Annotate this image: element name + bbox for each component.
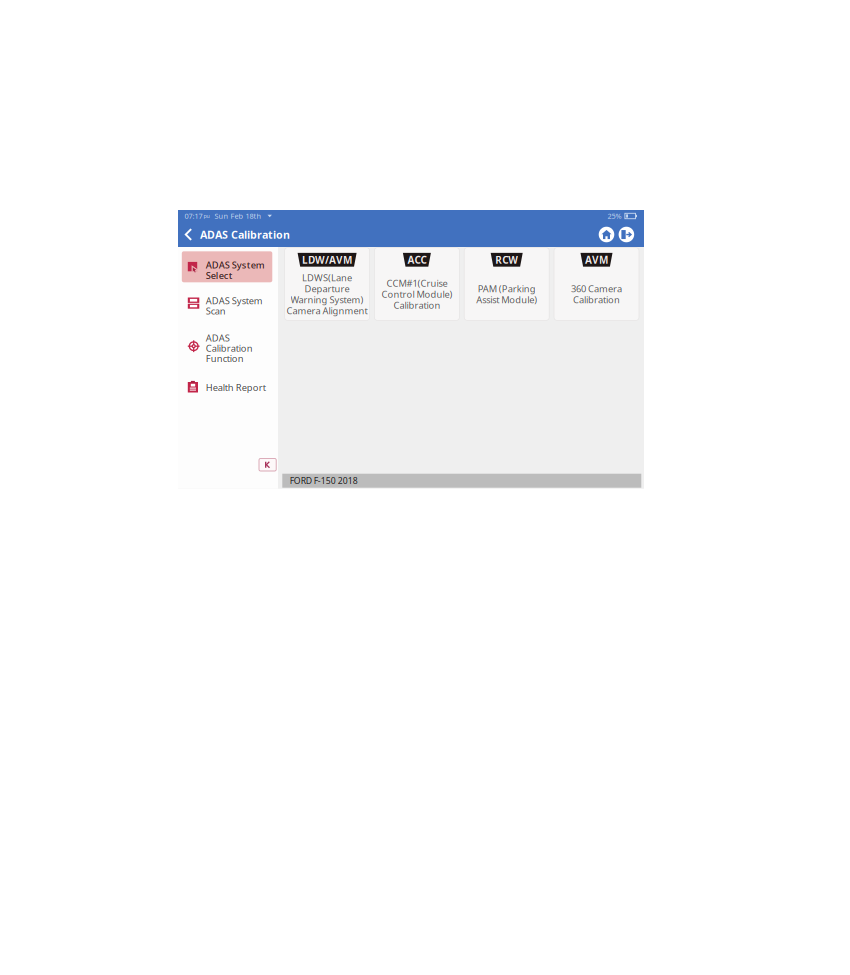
staticText: ACC <box>407 253 426 267</box>
staticText: RCW <box>495 253 518 267</box>
staticText: ADAS Calibration <box>200 227 290 242</box>
staticText: pu <box>203 212 209 220</box>
button[interactable]: Health Report <box>182 377 272 396</box>
staticText: LDWS(Lane <box>302 271 352 284</box>
staticText: Select <box>206 269 233 282</box>
button[interactable]: ADAS <box>182 327 272 365</box>
staticText: PAM (Parking <box>478 282 536 295</box>
staticText: 07:17 <box>184 211 202 221</box>
staticText: FORD F-150 2018 <box>290 475 358 487</box>
staticText: Assist Module) <box>476 293 537 306</box>
staticText: ADAS System <box>206 294 263 307</box>
staticText: Health Report <box>206 381 266 394</box>
staticText: Function <box>206 352 244 365</box>
staticText: AVM <box>585 253 608 267</box>
staticText: LDW/AVM <box>302 253 352 267</box>
button[interactable]: RCW <box>464 248 549 320</box>
staticText: CCM#1(Cruise <box>386 277 447 289</box>
staticText: 360 Camera <box>571 282 622 295</box>
button[interactable]: ADAS System <box>182 290 272 317</box>
staticText: Sun Feb 18th <box>214 211 261 221</box>
staticText: 25% <box>607 211 621 221</box>
staticText: ADAS <box>206 331 230 344</box>
button[interactable]: ACC <box>374 248 459 320</box>
button[interactable]: Home <box>599 227 614 242</box>
button[interactable]: AVM <box>554 248 639 320</box>
staticText: Scan <box>206 304 226 317</box>
staticText: Departure <box>305 282 350 295</box>
staticText: Calibration <box>573 293 620 306</box>
button[interactable]: Back <box>181 222 195 247</box>
staticText: Calibration <box>206 342 253 354</box>
button[interactable]: Log out <box>619 227 634 242</box>
staticText: Warning System) <box>291 293 364 306</box>
staticText: Control Module) <box>381 288 452 300</box>
button[interactable]: Collapse sidebar <box>259 458 276 471</box>
staticText: Calibration <box>393 299 440 311</box>
staticText: Camera Alignment <box>287 304 368 317</box>
staticText: ADAS System <box>206 259 265 271</box>
button[interactable]: ADAS System <box>182 251 272 282</box>
button[interactable]: LDW/AVM <box>285 248 370 320</box>
